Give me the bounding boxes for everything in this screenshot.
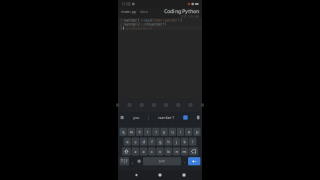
staticText: m — [183, 149, 187, 154]
button[interactable]: Tool — [152, 103, 156, 107]
button[interactable]: main.py — [121, 9, 136, 14]
staticText: i — [180, 129, 181, 134]
staticText: 3 — [120, 25, 122, 31]
button[interactable]: j — [173, 137, 180, 146]
button[interactable]: Microphone — [197, 116, 199, 119]
button[interactable]: Recents — [178, 170, 190, 180]
button[interactable]: Toolbar — [116, 103, 119, 107]
button[interactable]: Tool — [127, 103, 132, 107]
button[interactable]: l — [189, 137, 196, 146]
button[interactable]: n — [173, 147, 180, 155]
staticText: l — [192, 139, 193, 144]
button[interactable]: s — [132, 137, 139, 146]
staticText: = — [139, 21, 143, 27]
staticText: main.py — [121, 9, 136, 14]
staticText: e — [138, 129, 140, 134]
staticText: w — [130, 129, 133, 134]
staticText: c — [151, 149, 153, 154]
button[interactable]: t — [152, 128, 160, 136]
button[interactable]: Tool — [140, 103, 144, 107]
staticText: input( — [143, 17, 152, 23]
button[interactable]: h — [164, 137, 172, 146]
button[interactable]: b — [164, 147, 172, 155]
staticText: h — [167, 139, 169, 144]
button[interactable]: v — [156, 147, 164, 155]
staticText: 1 — [120, 17, 122, 23]
staticText: . — [184, 158, 185, 164]
staticText: v — [159, 149, 161, 154]
button[interactable]: g — [156, 137, 164, 146]
staticText: b — [167, 149, 169, 154]
staticText: d — [143, 139, 145, 144]
staticText: number2 — [123, 21, 139, 27]
button[interactable]: Tool — [176, 103, 180, 107]
staticText: z — [134, 149, 136, 154]
button[interactable]: r — [144, 128, 151, 136]
button[interactable]: Backspace — [189, 147, 198, 155]
button[interactable]: Enter — [188, 157, 200, 165]
staticText: s — [134, 139, 136, 144]
staticText: int( — [143, 21, 148, 27]
staticText: , — [132, 158, 133, 164]
staticText: 11:05 — [121, 1, 130, 7]
button[interactable]: docs — [140, 9, 148, 14]
button[interactable]: Home — [154, 170, 166, 180]
staticText: u — [171, 129, 173, 134]
staticText: f — [151, 139, 152, 144]
staticText: number1 — [123, 17, 139, 23]
staticText: ) — [164, 21, 165, 27]
button[interactable]: Tool — [164, 103, 168, 107]
button[interactable]: Space — [143, 157, 181, 165]
button[interactable]: z — [132, 147, 139, 155]
staticText: q — [122, 129, 124, 134]
button[interactable]: w — [128, 128, 135, 136]
staticText: ?123 — [121, 159, 128, 163]
staticText: print(number2) — [125, 25, 151, 31]
staticText: tech tutorials — [181, 15, 199, 18]
button[interactable]: ?123 — [120, 157, 129, 165]
button[interactable]: m — [181, 147, 188, 155]
button[interactable]: x — [140, 147, 147, 155]
button[interactable]: q — [119, 128, 127, 136]
button[interactable]: Comma — [130, 157, 135, 165]
staticText: y — [163, 129, 165, 134]
button[interactable]: i — [177, 128, 184, 136]
button[interactable]: Google — [120, 116, 124, 119]
staticText: = — [139, 17, 143, 23]
button[interactable]: y — [160, 128, 168, 136]
button[interactable]: c — [148, 147, 155, 155]
staticText: n — [175, 149, 177, 154]
staticText: o — [188, 129, 190, 134]
staticText: ) — [180, 17, 181, 23]
button[interactable]: Shift — [122, 147, 131, 155]
staticText: 'enter number1' — [152, 17, 180, 23]
staticText: a — [126, 139, 128, 144]
button[interactable]: a — [123, 137, 131, 146]
staticText: t — [155, 129, 156, 134]
staticText: number1 — [148, 21, 164, 27]
button[interactable]: d — [140, 137, 147, 146]
button[interactable]: Back — [130, 170, 142, 180]
button[interactable]: you — [133, 115, 139, 120]
button[interactable]: number1 — [158, 115, 174, 120]
button[interactable]: k — [181, 137, 188, 146]
staticText: j — [176, 139, 177, 144]
staticText: you — [133, 115, 139, 120]
staticText: x — [143, 149, 145, 154]
button[interactable]: e — [136, 128, 143, 136]
button[interactable]: o — [185, 128, 192, 136]
button[interactable]: Tool — [188, 103, 193, 107]
button[interactable]: Period — [182, 157, 187, 165]
button[interactable]: More — [201, 103, 204, 107]
staticText: k — [184, 139, 186, 144]
staticText: number1 — [158, 115, 174, 120]
staticText: docs — [140, 9, 148, 14]
button[interactable]: u — [169, 128, 176, 136]
button[interactable]: Emoji — [136, 157, 142, 165]
button[interactable]: Clipboard — [183, 115, 188, 120]
staticText: Coding Python — [164, 8, 199, 15]
staticText: Space — [158, 159, 165, 163]
button[interactable]: p — [193, 128, 201, 136]
staticText: p — [196, 129, 198, 134]
button[interactable]: f — [148, 137, 155, 146]
